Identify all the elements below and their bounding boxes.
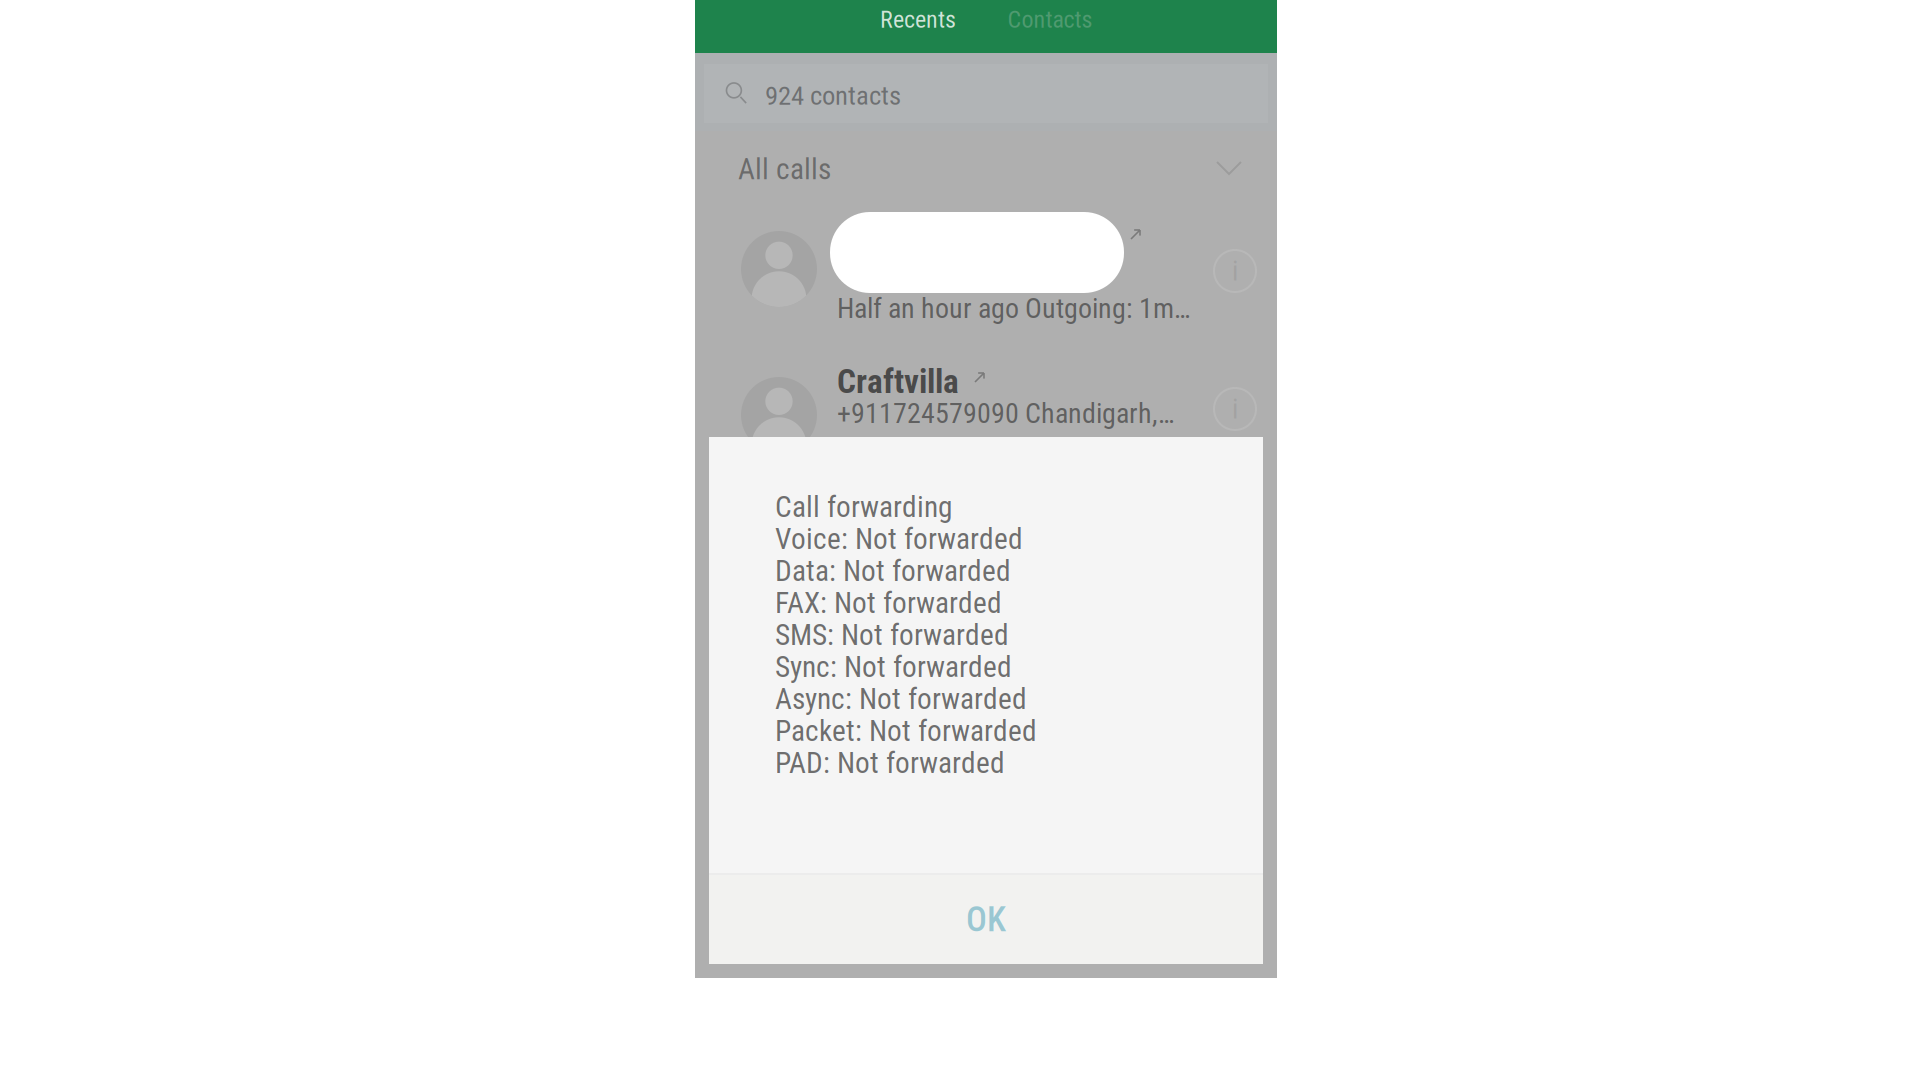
staticText: PAD: Not forwarded [775,746,1005,780]
staticText: Call forwarding [775,490,952,524]
staticText: Data: Not forwarded [775,554,1011,588]
staticText: Sync: Not forwarded [775,650,1012,684]
button[interactable]: Half an hour ago Outgoing: 1m… [695,199,1193,325]
button[interactable]: Call details [1193,353,1277,465]
staticText: Packet: Not forwarded [775,714,1037,748]
button[interactable]: Contacts [980,0,1120,46]
staticText: Recents [880,5,956,33]
staticText: Half an hour ago Outgoing: 1m… [837,292,1191,325]
staticText: FAX: Not forwarded [775,586,1002,620]
staticText: Craftvilla [837,362,959,401]
staticText: i [1232,255,1238,287]
staticText: +911724579090 Chandigarh,… [837,397,1175,430]
staticText: All calls [738,152,831,186]
staticText: Voice: Not forwarded [775,522,1023,556]
staticText: SMS: Not forwarded [775,618,1009,652]
staticText: OK [966,899,1006,940]
staticText: 924 contacts [765,80,901,111]
button[interactable]: Recents [848,0,988,46]
staticText: Contacts [1007,5,1092,33]
button[interactable]: Craftvilla [695,325,1193,437]
staticText: Async: Not forwarded [775,682,1027,716]
staticText: i [1232,393,1238,425]
button[interactable]: All calls [695,141,1277,199]
button[interactable]: 924 contacts [704,64,1268,123]
button[interactable]: OK [709,875,1263,964]
